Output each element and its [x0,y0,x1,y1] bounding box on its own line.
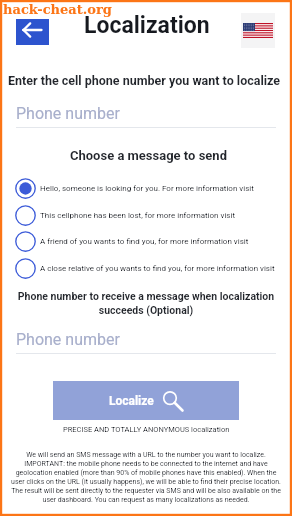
button[interactable]: Change language [241,13,275,48]
staticText: Enter the cell phone number you want to … [8,73,281,88]
staticText: Phone number [16,104,120,123]
staticText: A close relative of you wants to find yo… [40,264,275,273]
staticText: PRECISE AND TOTALLY ANONYMOUS localizati… [63,425,230,434]
button[interactable]: A close relative of you wants to find yo… [0,255,292,281]
button[interactable]: Phone number [0,98,292,128]
button[interactable]: A friend of you wants to find you, for m… [0,228,292,254]
button[interactable]: Hello, someone is looking for you. For m… [0,175,292,201]
button[interactable]: This cellphone has been lost, for more i… [0,202,292,228]
staticText: Hello, someone is looking for you. For m… [40,184,254,193]
staticText: Localization [84,12,210,39]
staticText: hack-cheat.org [3,2,112,17]
button[interactable]: Phone number [0,324,292,354]
staticText: This cellphone has been lost, for more i… [40,211,236,220]
staticText: Phone number to receive a message when l… [14,290,278,316]
staticText: A friend of you wants to find you, for m… [40,237,249,246]
staticText: Choose a message to send [70,148,227,163]
staticText: Localize [109,394,154,408]
button[interactable]: Localize [53,381,239,420]
staticText: Phone number [16,330,120,349]
staticText: We will send an SMS message with a URL t… [11,451,281,504]
button[interactable]: Back [16,19,49,45]
